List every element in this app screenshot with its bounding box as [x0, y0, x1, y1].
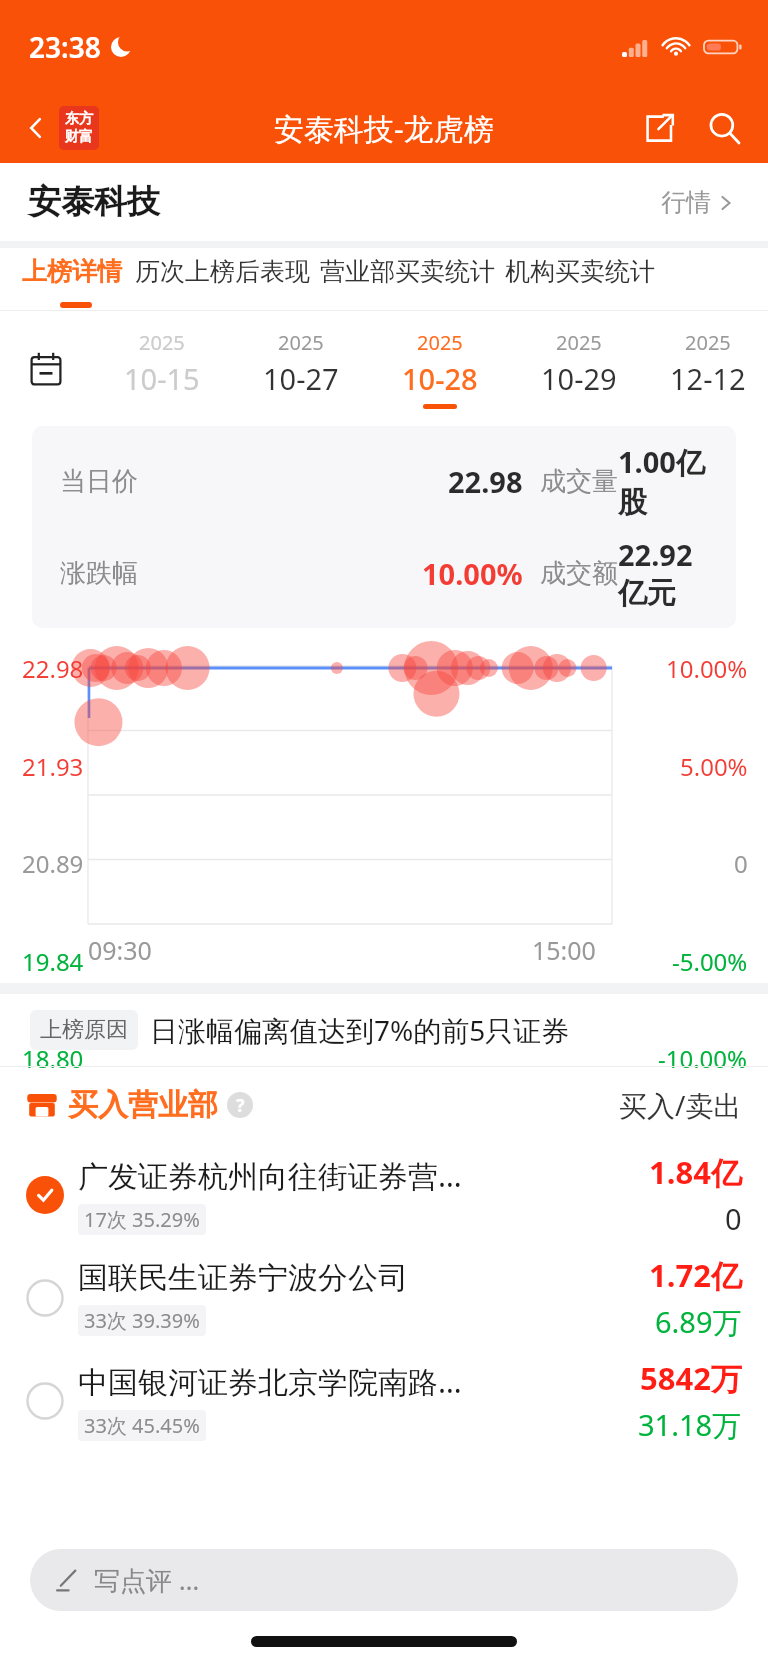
staticText: 2025	[556, 329, 602, 356]
staticText: 营业部买卖统计	[320, 256, 495, 287]
staticText: 19.84	[22, 945, 84, 978]
staticText: 成交额	[540, 557, 618, 590]
staticText: -10.00%	[658, 1042, 748, 1075]
button[interactable]: 行情	[655, 181, 740, 224]
button[interactable]: 广发证券杭州向往街证券营…	[0, 1143, 768, 1246]
staticText: 安泰科技-龙虎榜	[274, 108, 494, 149]
staticText: 上榜详情	[22, 256, 122, 287]
staticText: 行情	[661, 187, 711, 218]
staticText: 22.98	[448, 462, 523, 501]
button[interactable]: Calendar	[0, 351, 92, 387]
staticText: ?	[236, 1093, 245, 1118]
staticText: 1.84亿	[649, 1151, 742, 1193]
staticText: 5.00%	[680, 750, 748, 783]
button[interactable]: Share	[634, 103, 684, 153]
button[interactable]: 2025	[648, 329, 768, 409]
staticText: 31.18万	[638, 1405, 742, 1445]
staticText: 23:38	[29, 28, 101, 66]
button[interactable]: Help	[227, 1092, 253, 1118]
staticText: 10-15	[124, 359, 200, 398]
staticText: 东方	[65, 110, 93, 128]
staticText: 12-12	[670, 359, 746, 398]
staticText: 10.00%	[422, 554, 523, 593]
staticText: 财富	[65, 128, 93, 146]
staticText: 机构买卖统计	[505, 256, 655, 287]
staticText: 0	[725, 1199, 742, 1238]
staticText: 0	[734, 847, 748, 880]
staticText: 21.93	[22, 750, 84, 783]
staticText: 成交量	[540, 465, 618, 498]
button[interactable]: 国联民生证券宁波分公司	[0, 1246, 768, 1349]
staticText: 5842万	[640, 1357, 742, 1399]
staticText: 10-29	[541, 359, 617, 398]
staticText: 中国银河证券北京学院南路…	[78, 1361, 462, 1402]
button[interactable]: Back	[14, 106, 58, 150]
staticText: 09:30	[88, 933, 152, 967]
staticText: 22.98	[22, 652, 84, 685]
staticText: 33次 39.39%	[84, 1307, 200, 1334]
staticText: 2025	[278, 329, 324, 356]
staticText: 国联民生证券宁波分公司	[78, 1259, 408, 1297]
staticText: 写点评 …	[94, 1562, 200, 1598]
staticText: 10-28	[402, 359, 478, 398]
staticText: 2025	[139, 329, 185, 356]
staticText: 1.00亿股	[618, 442, 708, 521]
staticText: 买入营业部	[68, 1086, 218, 1124]
button[interactable]: 历次上榜后表现	[132, 248, 313, 295]
button[interactable]: Search	[698, 102, 750, 154]
staticText: 17次 35.29%	[84, 1206, 200, 1233]
staticText: 广发证券杭州向往街证券营…	[78, 1155, 462, 1196]
staticText: -5.00%	[672, 945, 748, 978]
staticText: 2025	[417, 329, 463, 356]
button[interactable]: 2025	[509, 329, 648, 409]
staticText: 1.72亿	[649, 1254, 742, 1296]
button[interactable]: 东方财富	[59, 106, 99, 150]
button[interactable]: 上榜详情	[16, 248, 128, 295]
button[interactable]: 2025	[231, 329, 370, 409]
staticText: 6.89万	[655, 1302, 742, 1342]
button[interactable]: 2025	[92, 329, 231, 409]
staticText: 20.89	[22, 847, 84, 880]
staticText: 15:00	[532, 933, 596, 967]
staticText: 22.92亿元	[618, 535, 708, 612]
staticText: 安泰科技	[28, 181, 160, 223]
staticText: 买入/卖出	[619, 1086, 742, 1124]
button[interactable]: 2025	[370, 329, 509, 409]
staticText: 当日价	[60, 465, 138, 498]
staticText: 2025	[685, 329, 731, 356]
staticText: 涨跌幅	[60, 557, 138, 590]
button[interactable]: 机构买卖统计	[502, 248, 658, 295]
button[interactable]: 营业部买卖统计	[317, 248, 498, 295]
staticText: 日涨幅偏离值达到7%的前5只证券	[150, 1011, 570, 1049]
button[interactable]: 写点评 …	[30, 1549, 738, 1611]
staticText: 10-27	[263, 359, 339, 398]
staticText: 历次上榜后表现	[135, 256, 310, 287]
button[interactable]: 中国银河证券北京学院南路…	[0, 1349, 768, 1452]
staticText: 10.00%	[666, 652, 748, 685]
staticText: 上榜原因	[40, 1016, 128, 1044]
staticText: 18.80	[22, 1042, 84, 1075]
staticText: 33次 45.45%	[84, 1412, 200, 1439]
